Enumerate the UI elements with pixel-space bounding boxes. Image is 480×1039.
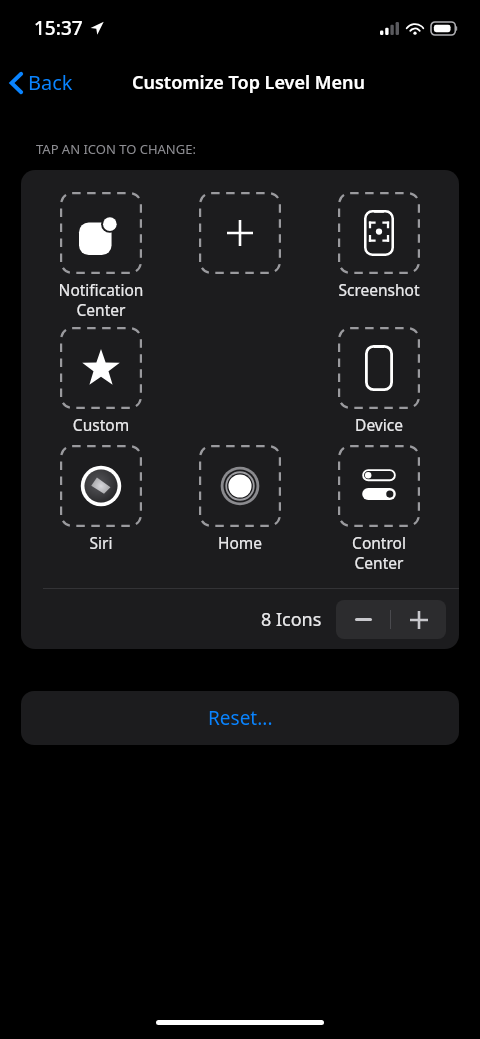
button[interactable]	[60, 327, 142, 409]
button[interactable]: Back	[0, 63, 83, 102]
button[interactable]	[60, 192, 142, 274]
button[interactable]: Add icon	[391, 600, 446, 639]
staticText: Customize Top Level Menu	[132, 70, 365, 95]
staticText: 8 Icons	[261, 607, 322, 632]
staticText: Back	[28, 69, 73, 96]
staticText: Custom	[43, 414, 159, 435]
staticText: Notification Center	[43, 279, 159, 321]
staticText: Control Center	[321, 532, 437, 574]
button[interactable]	[338, 327, 420, 409]
staticText: Siri	[43, 532, 159, 553]
button[interactable]	[338, 445, 420, 527]
staticText: 15:37	[34, 15, 83, 41]
staticText: Device	[321, 414, 437, 435]
button[interactable]	[338, 192, 420, 274]
button[interactable]	[60, 445, 142, 527]
staticText: TAP AN ICON TO CHANGE:	[36, 140, 196, 158]
staticText: Screenshot	[321, 279, 437, 300]
button[interactable]: Add icon	[199, 192, 281, 274]
staticText: Home	[182, 532, 298, 553]
button[interactable]	[199, 445, 281, 527]
button[interactable]: Remove icon	[336, 600, 390, 639]
button[interactable]: Reset...	[21, 691, 459, 745]
staticText: Reset...	[208, 705, 273, 731]
